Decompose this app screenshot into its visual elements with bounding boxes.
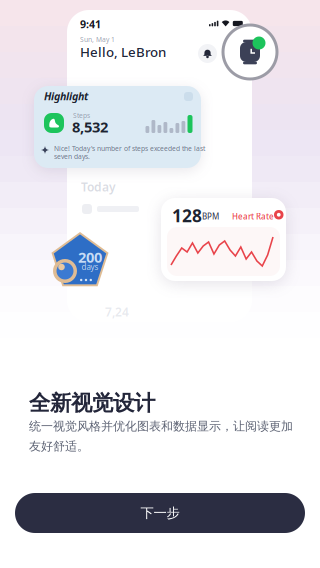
staticText: Heart Rate [232,211,274,222]
staticText: BPM [202,211,219,222]
staticText: 下一步 [140,505,179,521]
button[interactable]: Notifications [198,44,217,63]
staticText: 全新视觉设计 [29,390,155,416]
staticText: days [81,262,98,272]
staticText: seven days. [54,152,90,161]
staticText: 200 [78,247,102,267]
staticText: Highlight [44,89,88,103]
staticText: 9:41 [80,17,101,31]
staticText: Nice! Today's number of steps exceeded t… [54,144,205,153]
staticText: Hello, LeBron [80,43,166,61]
staticText: 友好舒适。 [29,439,89,454]
staticText: Sun, May 1 [80,35,115,44]
staticText: Steps [73,111,90,120]
staticText: 7,24 [105,304,129,320]
staticText: 8,532 [72,117,108,136]
staticText: 统一视觉风格并优化图表和数据显示，让阅读更加 [29,419,293,434]
staticText: 128 [172,204,202,227]
staticText: Today [81,179,116,195]
button[interactable]: 下一步 [15,493,305,533]
